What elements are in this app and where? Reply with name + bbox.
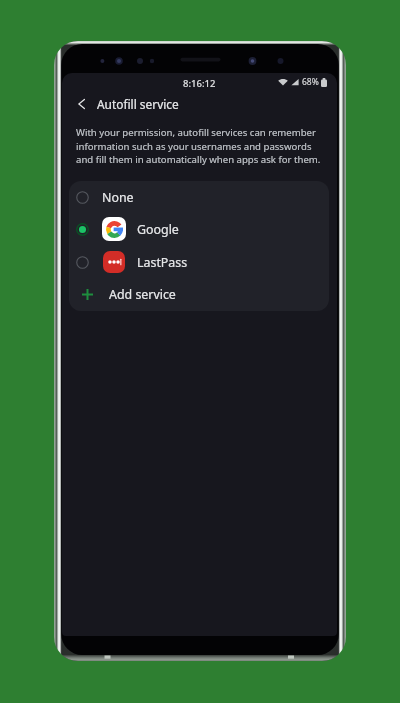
staticText: LastPass <box>137 254 188 271</box>
staticText: Google <box>137 221 179 238</box>
staticText: Add service <box>109 286 176 303</box>
button[interactable]: LastPass <box>69 246 329 278</box>
staticText: With your permission, autofill services … <box>76 126 327 165</box>
staticText: None <box>102 189 134 206</box>
staticText: 68% <box>302 76 319 88</box>
button[interactable]: Google <box>69 213 329 245</box>
button[interactable]: Add service <box>69 278 329 310</box>
button[interactable]: Navigate up <box>71 93 93 115</box>
staticText: 8:16:12 <box>183 77 216 90</box>
staticText: Autofill service <box>97 96 179 112</box>
button[interactable]: None <box>69 181 329 213</box>
